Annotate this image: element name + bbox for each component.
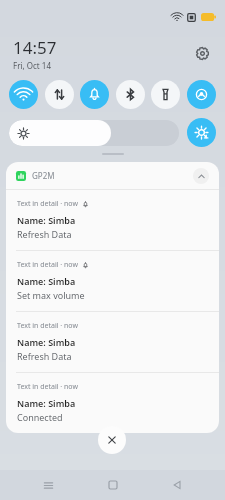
button[interactable]: Text in detail · now xyxy=(6,251,219,311)
button[interactable]: TORCH xyxy=(151,80,180,109)
button[interactable]: Text in detail · now xyxy=(6,312,219,372)
staticText: Name: Simba xyxy=(17,214,76,226)
button[interactable]: Back xyxy=(161,470,193,500)
staticText: Name: Simba xyxy=(17,397,76,409)
button[interactable]: Clear all notifications xyxy=(98,426,126,454)
staticText: 14:57 xyxy=(13,36,57,59)
staticText: Set max volume xyxy=(17,289,85,301)
button[interactable]: WIFI xyxy=(9,80,38,109)
button[interactable]: BELL xyxy=(80,80,109,109)
button[interactable]: Home xyxy=(97,470,129,500)
staticText: Refresh Data xyxy=(17,228,72,240)
staticText: Text in detail · now xyxy=(17,382,78,392)
staticText: Fri, Oct 14 xyxy=(13,60,51,71)
staticText: Name: Simba xyxy=(17,336,76,348)
button[interactable]: Brightness xyxy=(9,120,179,146)
button[interactable]: GP2M xyxy=(6,162,219,189)
staticText: GP2M xyxy=(32,170,55,181)
staticText: Text in detail · now xyxy=(17,199,78,209)
button[interactable]: Auto brightness xyxy=(187,118,216,147)
button[interactable]: Recents xyxy=(32,470,64,500)
staticText: Refresh Data xyxy=(17,350,72,362)
button[interactable]: Text in detail · now xyxy=(6,373,219,433)
staticText: Text in detail · now xyxy=(17,321,78,331)
button[interactable]: BT xyxy=(116,80,145,109)
staticText: Connected xyxy=(17,411,63,423)
button[interactable]: DATA xyxy=(45,80,74,109)
button[interactable]: Settings xyxy=(190,41,214,65)
button[interactable]: LOC xyxy=(187,80,216,109)
button[interactable]: Text in detail · now xyxy=(6,190,219,250)
staticText: Name: Simba xyxy=(17,275,76,287)
staticText: Text in detail · now xyxy=(17,260,78,270)
button[interactable]: Collapse xyxy=(193,168,209,184)
